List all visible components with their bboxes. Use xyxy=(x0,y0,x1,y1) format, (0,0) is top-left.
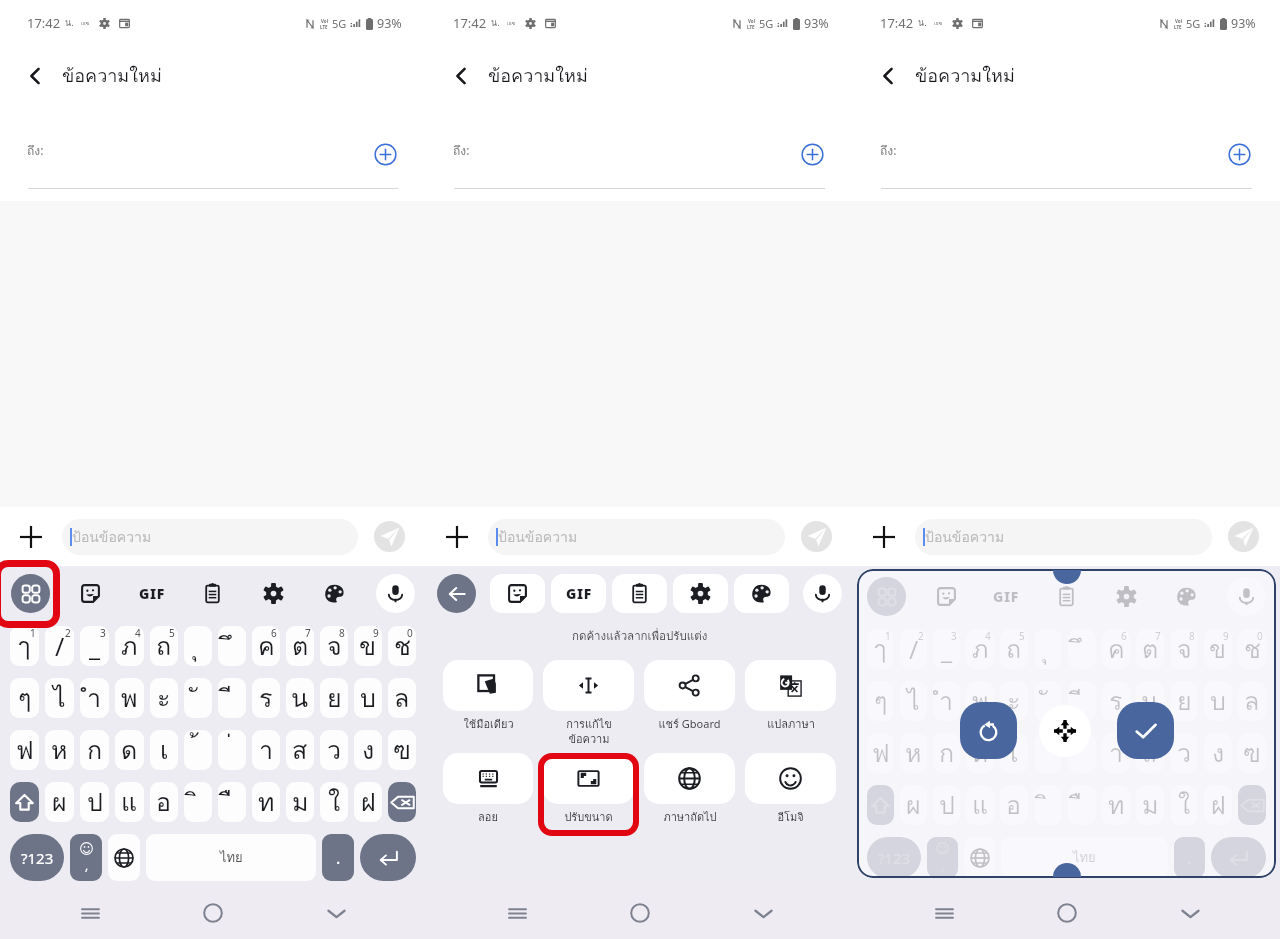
button[interactable]: ฟ xyxy=(10,730,39,770)
button[interactable]: Clipboard xyxy=(609,566,670,620)
button[interactable]: Hide keyboard xyxy=(1167,890,1213,936)
button[interactable]: Move xyxy=(1039,705,1091,757)
button[interactable]: ั xyxy=(184,678,212,718)
button[interactable]: / xyxy=(45,626,74,666)
button[interactable]: ุ xyxy=(1034,629,1062,669)
button[interactable]: ้ xyxy=(184,730,212,770)
button[interactable]: บ xyxy=(1204,681,1232,721)
button[interactable]: Add recipient xyxy=(372,141,398,167)
button[interactable]: Change language xyxy=(964,837,995,878)
button[interactable]: ก xyxy=(80,730,109,770)
button[interactable]: ปรับขนาด xyxy=(538,753,639,825)
button[interactable]: ่ xyxy=(218,730,246,770)
button[interactable]: ต xyxy=(1136,629,1164,669)
button[interactable]: อีโมจิ xyxy=(740,753,841,825)
button[interactable]: Home xyxy=(1044,890,1090,936)
button[interactable]: ไทย xyxy=(1001,837,1168,878)
button[interactable]: Enter xyxy=(1211,837,1266,878)
button[interactable]: ๅ xyxy=(10,626,39,666)
button[interactable]: ด xyxy=(966,733,994,773)
button[interactable]: Recents xyxy=(921,890,967,936)
button[interactable]: ๅ xyxy=(867,629,894,669)
button[interactable]: จ xyxy=(1170,629,1198,669)
button[interactable]: ?123 xyxy=(10,834,64,881)
button[interactable]: Hide keyboard xyxy=(740,890,786,936)
button[interactable]: แชร์ Gboard xyxy=(639,660,740,732)
button[interactable]: Home xyxy=(617,890,663,936)
button[interactable]: Back xyxy=(448,63,474,89)
button[interactable]: Sticker xyxy=(487,566,548,620)
button[interactable]: Shift xyxy=(10,782,39,822)
button[interactable]: Back xyxy=(875,63,901,89)
button[interactable]: Reset xyxy=(960,702,1017,759)
button[interactable]: Themes xyxy=(731,566,792,620)
button[interactable]: Themes xyxy=(304,566,365,620)
button[interactable]: ๆ xyxy=(10,678,39,718)
button[interactable]: More tools xyxy=(0,566,60,620)
button[interactable]: GIF xyxy=(121,566,182,620)
button[interactable]: ่ xyxy=(1068,733,1096,773)
button[interactable]: ป้อนข้อความ xyxy=(488,519,785,555)
button[interactable]: ุ xyxy=(184,626,212,666)
button[interactable]: Voice input xyxy=(792,566,853,620)
button[interactable]: ถ xyxy=(150,626,178,666)
button[interactable]: Hide keyboard xyxy=(313,890,359,936)
button[interactable]: ะ xyxy=(150,678,178,718)
button[interactable]: Send xyxy=(1228,521,1259,552)
button[interactable]: Add attachment xyxy=(869,522,899,552)
button[interactable]: า xyxy=(1102,733,1130,773)
button[interactable]: อ xyxy=(150,782,178,822)
button[interactable]: ค xyxy=(1102,629,1130,669)
button[interactable]: Home xyxy=(190,890,236,936)
button[interactable]: Settings xyxy=(670,566,731,620)
button[interactable]: Settings xyxy=(1096,569,1156,623)
button[interactable]: Done xyxy=(1117,702,1174,759)
button[interactable]: ึ xyxy=(1068,629,1096,669)
button[interactable]: ห xyxy=(45,730,74,770)
button[interactable]: ๆ xyxy=(867,681,894,721)
button[interactable]: ข xyxy=(354,626,382,666)
button[interactable]: Send xyxy=(801,521,832,552)
button[interactable]: Add recipient xyxy=(799,141,825,167)
button[interactable]: ิ xyxy=(184,782,212,822)
button[interactable]: แ xyxy=(966,785,994,825)
button[interactable]: Shift xyxy=(867,785,894,825)
button[interactable]: เ xyxy=(150,730,178,770)
button[interactable]: Voice input xyxy=(365,566,426,620)
button[interactable]: ิ xyxy=(1034,785,1062,825)
button[interactable]: Send xyxy=(374,521,405,552)
button[interactable]: Sticker xyxy=(916,569,976,623)
button[interactable]: ง xyxy=(354,730,382,770)
button[interactable]: ำ xyxy=(933,681,960,721)
button[interactable]: ผ xyxy=(900,785,927,825)
button[interactable]: ำ xyxy=(80,678,109,718)
button[interactable]: ว xyxy=(1170,733,1198,773)
button[interactable]: แ xyxy=(115,782,144,822)
button[interactable]: ม xyxy=(1136,785,1164,825)
button[interactable]: น xyxy=(286,678,314,718)
button[interactable]: ส xyxy=(1136,733,1164,773)
button[interactable]: ร xyxy=(252,678,280,718)
button[interactable]: ภ xyxy=(966,629,994,669)
button[interactable]: ภาษาถัดไป xyxy=(639,753,740,825)
button[interactable]: ฃ xyxy=(388,730,416,770)
button[interactable]: Clipboard xyxy=(182,566,243,620)
button[interactable]: ไ xyxy=(45,678,74,718)
button[interactable]: ป xyxy=(80,782,109,822)
button[interactable]: ช xyxy=(1238,629,1266,669)
button[interactable]: ล xyxy=(388,678,416,718)
button[interactable]: ใ xyxy=(1170,785,1198,825)
button[interactable]: Backspace xyxy=(1238,785,1266,825)
button[interactable]: ั xyxy=(1034,681,1062,721)
button[interactable]: Back xyxy=(22,63,48,89)
button[interactable]: GIF xyxy=(548,566,609,620)
button[interactable]: ฟ xyxy=(867,733,894,773)
button[interactable]: ร xyxy=(1102,681,1130,721)
button[interactable]: ี xyxy=(218,678,246,718)
button[interactable]: ถ xyxy=(1000,629,1028,669)
button[interactable]: พ xyxy=(115,678,144,718)
button[interactable]: Add attachment xyxy=(442,522,472,552)
button[interactable]: น xyxy=(1136,681,1164,721)
button[interactable]: ล xyxy=(1238,681,1266,721)
button[interactable]: า xyxy=(252,730,280,770)
